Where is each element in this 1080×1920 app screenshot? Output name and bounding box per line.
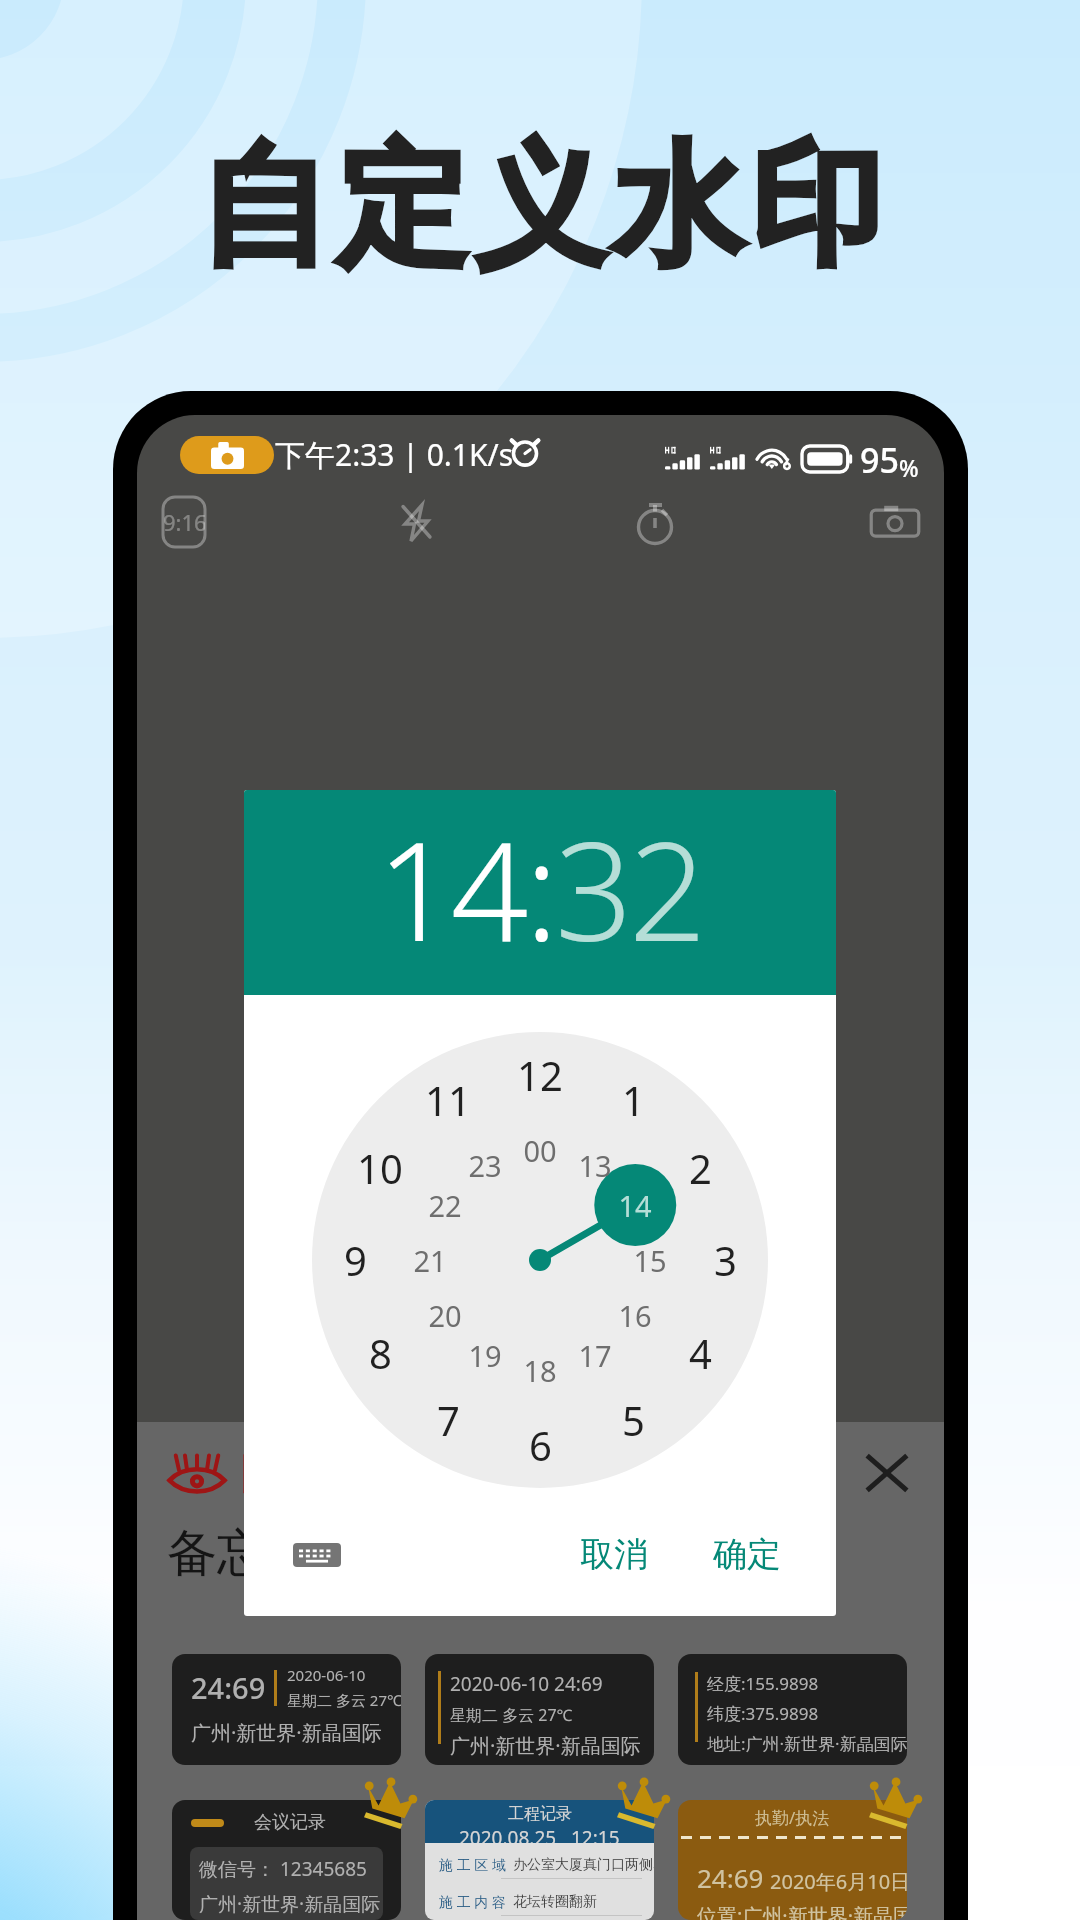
button[interactable]: 2 — [660, 1136, 740, 1200]
staticText: 花坛转圈翻新 — [513, 1893, 597, 1911]
button[interactable]: 3 — [685, 1228, 765, 1292]
button[interactable]: 9 — [315, 1228, 395, 1292]
button[interactable]: Flash off — [392, 497, 442, 547]
staticText: 00 — [523, 1131, 557, 1170]
button[interactable]: 14 — [377, 796, 525, 981]
button[interactable]: 13 — [555, 1139, 635, 1191]
button[interactable]: Camera in use — [180, 436, 274, 474]
button[interactable]: 18 — [500, 1344, 580, 1396]
button[interactable]: 00 — [500, 1124, 580, 1176]
staticText: 21 — [413, 1241, 447, 1280]
staticText: 位置:广州·新世界·新晶国际 — [697, 1902, 907, 1920]
button[interactable]: Aspect ratio 9 to 16 — [163, 497, 205, 547]
button[interactable]: 32 — [555, 796, 703, 981]
staticText: 取消 — [580, 1533, 648, 1576]
staticText: % — [899, 452, 919, 483]
staticText: 12 — [517, 1048, 563, 1102]
button[interactable]: 2020-06-10 24:69 — [425, 1654, 654, 1765]
button[interactable]: 12 — [500, 1043, 580, 1107]
button[interactable]: 1 — [593, 1068, 673, 1132]
staticText: 13 — [578, 1146, 612, 1185]
button[interactable]: Switch to keyboard input — [293, 1543, 341, 1567]
staticText: 2020-06-10 24:69 — [450, 1671, 603, 1697]
staticText: 9:16 — [163, 507, 205, 537]
button[interactable]: 15 — [610, 1234, 690, 1286]
staticText: 星期二 多云 27℃ — [450, 1704, 573, 1726]
staticText: 15 — [633, 1241, 667, 1280]
button[interactable]: 11 — [408, 1068, 488, 1132]
staticText: 2 — [689, 1141, 712, 1195]
staticText: 施 工 内 容 — [439, 1892, 506, 1911]
staticText: 工程记录 — [508, 1804, 572, 1824]
button[interactable]: 22 — [405, 1179, 485, 1231]
button[interactable]: 23 — [445, 1139, 525, 1191]
staticText: 7 — [437, 1393, 460, 1447]
button[interactable]: 4 — [660, 1321, 740, 1385]
button[interactable]: Timer — [630, 497, 680, 547]
button[interactable]: 会议记录 — [172, 1800, 401, 1920]
staticText: 95 — [860, 437, 899, 483]
button[interactable]: Close — [856, 1442, 918, 1504]
staticText: 广州·新世界·新晶国际 — [191, 1719, 382, 1746]
staticText: 14 — [618, 1186, 652, 1225]
staticText: 24:69 — [191, 1668, 266, 1707]
button[interactable]: 16 — [595, 1289, 675, 1341]
staticText: 地址:广州·新世界·新晶国际 — [707, 1732, 907, 1755]
button[interactable]: 19 — [445, 1329, 525, 1381]
button[interactable]: 10 — [340, 1136, 420, 1200]
staticText: 1 — [622, 1073, 645, 1127]
staticText: 23 — [468, 1146, 502, 1185]
button[interactable]: 21 — [390, 1234, 470, 1286]
staticText: 4 — [689, 1326, 712, 1380]
staticText: 经度:155.9898 — [707, 1672, 819, 1695]
staticText: 微信号： 12345685 — [199, 1856, 367, 1882]
staticText: 隐藏水印 — [241, 1447, 409, 1500]
staticText: 自定义水印 — [195, 124, 885, 290]
staticText: 备忘录 — [167, 1522, 317, 1585]
staticText: 20 — [428, 1296, 462, 1335]
button[interactable]: 8 — [340, 1321, 420, 1385]
staticText: 施 工 区 域 — [439, 1855, 506, 1874]
button[interactable]: 20 — [405, 1289, 485, 1341]
staticText: 19 — [468, 1336, 502, 1375]
button[interactable]: 7 — [408, 1388, 488, 1452]
staticText: 下午2:33 | 0.1K/s — [275, 434, 514, 475]
button[interactable]: 24:69 — [172, 1654, 401, 1765]
button[interactable]: 经度:155.9898 — [678, 1654, 907, 1765]
staticText: 2020-06-10 — [287, 1665, 366, 1685]
staticText: 星期二 多云 27℃ — [287, 1690, 401, 1710]
staticText: 广州·新世界·新晶国际 — [450, 1732, 641, 1759]
staticText: 3 — [714, 1233, 737, 1287]
button[interactable]: 执勤/执法 — [678, 1800, 907, 1920]
staticText: 广州·新世界·新晶国际 — [199, 1891, 381, 1917]
staticText: 22 — [428, 1186, 462, 1225]
staticText: 18 — [523, 1351, 557, 1390]
button[interactable]: 17 — [555, 1329, 635, 1381]
button[interactable]: 14 — [595, 1179, 675, 1231]
staticText: : — [525, 796, 555, 981]
staticText: 确定 — [713, 1533, 781, 1576]
button[interactable]: 6 — [500, 1413, 580, 1477]
button[interactable]: Switch camera — [868, 495, 922, 549]
staticText: 会议记录 — [254, 1811, 326, 1834]
button[interactable]: 工程记录 — [425, 1800, 654, 1920]
staticText: 6 — [529, 1418, 552, 1472]
staticText: 2020年6月10日 — [770, 1868, 907, 1895]
button[interactable]: 确定 — [707, 1527, 787, 1582]
staticText: 执勤/执法 — [755, 1806, 830, 1829]
button[interactable]: 取消 — [574, 1527, 654, 1582]
staticText: 16 — [618, 1296, 652, 1335]
staticText: 24:69 — [697, 1860, 764, 1895]
staticText: 11 — [425, 1073, 471, 1127]
staticText: 纬度:375.9898 — [707, 1702, 819, 1725]
staticText: 9 — [344, 1233, 367, 1287]
button[interactable]: 5 — [593, 1388, 673, 1452]
staticText: 2020.08.25 12:15 — [459, 1825, 620, 1843]
staticText: 办公室大厦真门口两侧花坛 — [513, 1856, 654, 1874]
staticText: 8 — [369, 1326, 392, 1380]
staticText: 10 — [357, 1141, 403, 1195]
staticText: 17 — [578, 1336, 612, 1375]
staticText: 5 — [622, 1393, 645, 1447]
